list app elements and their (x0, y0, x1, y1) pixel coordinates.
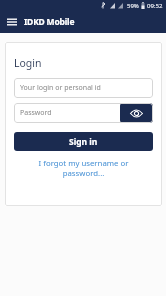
staticText: 59% (127, 2, 139, 10)
staticText: Your login or personal id (20, 83, 101, 93)
staticText: 09:52 (147, 2, 163, 10)
staticText: Login (14, 56, 42, 70)
button[interactable] (120, 103, 153, 123)
staticText: Sign in (69, 136, 98, 148)
button[interactable]: Your login or personal id (14, 78, 153, 98)
staticText: IDKD Mobile (24, 16, 75, 28)
button[interactable]: I forgot my username or password... (14, 158, 153, 178)
staticText: Password (20, 108, 52, 118)
button[interactable] (6, 14, 18, 30)
button[interactable]: Sign in (14, 132, 153, 151)
button[interactable]: Password (14, 103, 153, 123)
